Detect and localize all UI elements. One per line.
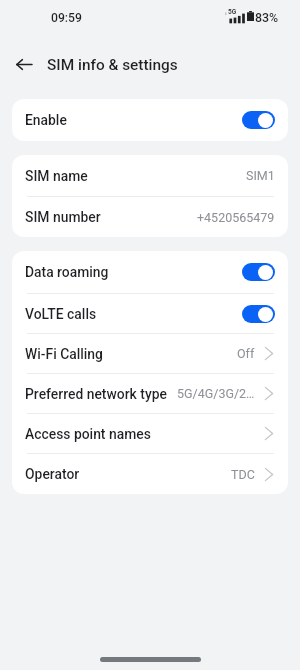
button[interactable]: SIM name bbox=[12, 155, 288, 196]
staticText: +4520565479 bbox=[197, 210, 275, 225]
button[interactable]: Preferred network type bbox=[12, 374, 288, 413]
staticText: 83% bbox=[255, 10, 279, 25]
staticText: Wi-Fi Calling bbox=[25, 346, 103, 362]
staticText: Access point names bbox=[25, 426, 151, 442]
button[interactable]: Enable bbox=[12, 99, 288, 141]
button[interactable]: SIM number bbox=[12, 197, 288, 237]
staticText: 5G bbox=[228, 8, 237, 16]
button[interactable]: Operator bbox=[12, 454, 288, 494]
staticText: SIM name bbox=[25, 168, 88, 184]
staticText: Off bbox=[237, 346, 255, 361]
button[interactable]: Back bbox=[9, 49, 39, 79]
staticText: SIM number bbox=[25, 209, 101, 225]
staticText: Data roaming bbox=[25, 264, 109, 280]
staticText: 5G/4G/3G/2… bbox=[177, 386, 255, 401]
staticText: Preferred network type bbox=[25, 386, 167, 402]
staticText: TDC bbox=[231, 467, 255, 482]
staticText: SIM info & settings bbox=[47, 56, 178, 74]
button[interactable]: Wi-Fi Calling bbox=[12, 334, 288, 373]
button[interactable]: Data roaming bbox=[12, 251, 288, 293]
staticText: Enable bbox=[25, 112, 67, 128]
button[interactable]: VoLTE calls bbox=[12, 294, 288, 333]
staticText: SIM1 bbox=[246, 168, 275, 183]
button[interactable]: Access point names bbox=[12, 414, 288, 453]
staticText: 09:59 bbox=[51, 11, 82, 25]
staticText: VoLTE calls bbox=[25, 306, 97, 322]
staticText: Operator bbox=[25, 466, 80, 482]
